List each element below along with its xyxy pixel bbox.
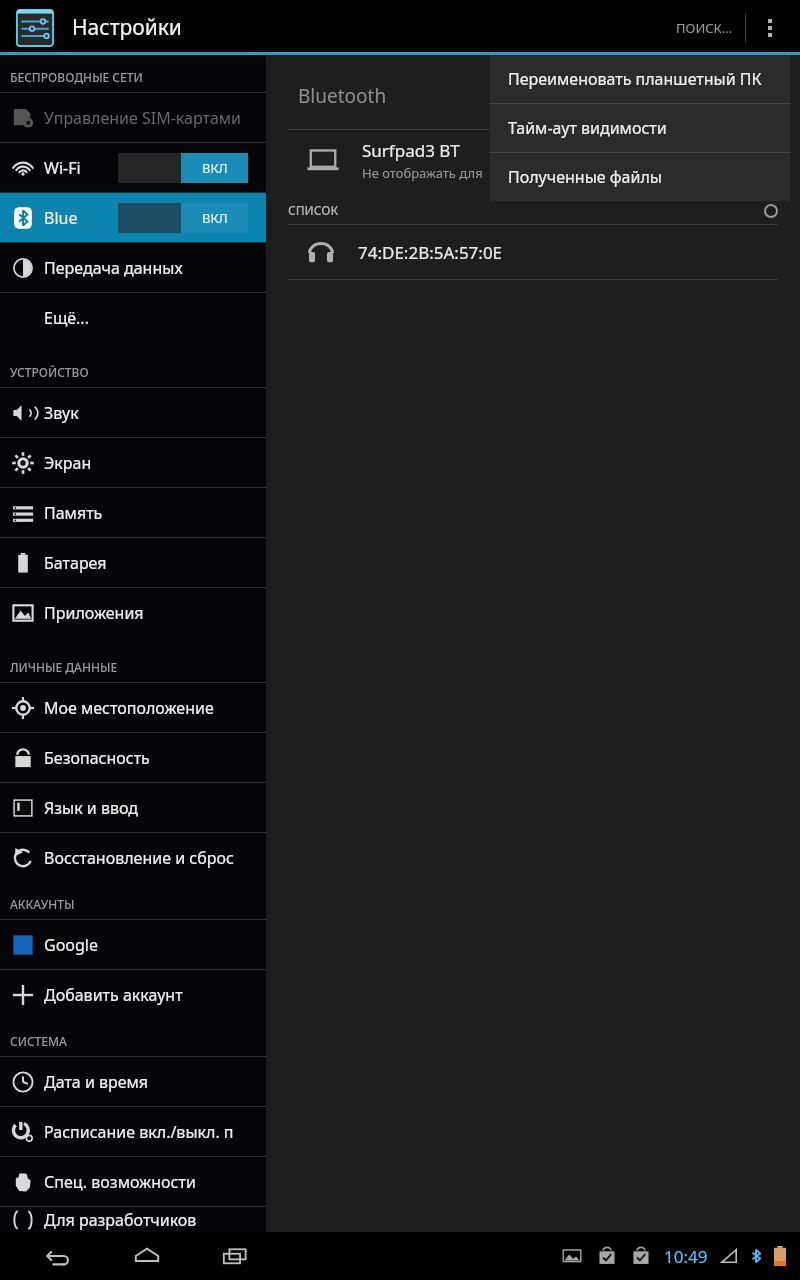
staticText: Батарея: [44, 552, 107, 574]
button[interactable]: Безопасность: [0, 733, 266, 782]
button[interactable]: ВКЛ: [118, 203, 248, 233]
staticText: ПОИСК...: [676, 19, 733, 37]
button[interactable]: Расписание вкл./выкл. п: [0, 1107, 266, 1156]
button[interactable]: Память: [0, 488, 266, 537]
staticText: АККАУНТЫ: [10, 896, 75, 912]
staticText: Bluetooth: [44, 207, 81, 229]
staticText: СПИСОК: [288, 202, 339, 218]
button[interactable]: Surfpad3 BT: [266, 130, 800, 190]
button[interactable]: Полученные файлы: [490, 153, 790, 201]
button[interactable]: Переименовать планшетный ПК: [490, 55, 790, 103]
staticText: Расписание вкл./выкл. п: [44, 1121, 234, 1143]
button[interactable]: Экран: [0, 438, 266, 487]
staticText: ВКЛ: [202, 159, 228, 177]
button[interactable]: Мое местоположение: [0, 683, 266, 732]
staticText: 10:49: [664, 1245, 708, 1268]
button[interactable]: Язык и ввод: [0, 783, 266, 832]
staticText: Добавить аккаунт: [44, 984, 183, 1006]
button[interactable]: Bluetooth: [0, 193, 266, 242]
staticText: Для разработчиков: [44, 1209, 197, 1231]
button[interactable]: Для разработчиков: [0, 1207, 266, 1232]
button[interactable]: Google: [0, 920, 266, 969]
staticText: Тайм-аут видимости: [508, 117, 667, 139]
button[interactable]: Ещё: [746, 0, 794, 55]
staticText: ВКЛ: [202, 209, 228, 227]
staticText: Безопасность: [44, 747, 150, 769]
staticText: Мое местоположение: [44, 697, 214, 719]
staticText: Дата и время: [44, 1071, 149, 1093]
button[interactable]: Передача данных: [0, 243, 266, 292]
staticText: 74:DE:2B:5A:57:0E: [358, 241, 503, 264]
staticText: Экран: [44, 452, 92, 474]
button[interactable]: Управление SIM-картами: [0, 93, 266, 142]
staticText: УСТРОЙСТВО: [10, 364, 89, 380]
button[interactable]: Обзор: [212, 1233, 258, 1279]
button[interactable]: Добавить аккаунт: [0, 970, 266, 1019]
button[interactable]: Назад: [36, 1233, 82, 1279]
button[interactable]: Ещё...: [0, 293, 266, 342]
staticText: ЛИЧНЫЕ ДАННЫЕ: [10, 659, 118, 675]
button[interactable]: Главный экран: [124, 1233, 170, 1279]
staticText: БЕСПРОВОДНЫЕ СЕТИ: [10, 69, 143, 85]
staticText: Полученные файлы: [508, 166, 662, 188]
staticText: Bluetooth: [298, 83, 387, 109]
staticText: Не отображать для: [362, 164, 483, 182]
staticText: Wi-Fi: [44, 157, 81, 179]
staticText: Ещё...: [44, 307, 89, 329]
button[interactable]: 74:DE:2B:5A:57:0E: [266, 225, 800, 279]
staticText: Спец. возможности: [44, 1171, 196, 1193]
button[interactable]: Тайм-аут видимости: [490, 104, 790, 152]
staticText: Переименовать планшетный ПК: [508, 68, 762, 90]
button[interactable]: Приложения: [0, 588, 266, 637]
button[interactable]: Батарея: [0, 538, 266, 587]
staticText: Настройки: [72, 13, 182, 42]
button[interactable]: Звук: [0, 388, 266, 437]
button[interactable]: Спец. возможности: [0, 1157, 266, 1206]
button[interactable]: Wi-Fi: [0, 143, 266, 192]
button[interactable]: ПОИСК...: [676, 0, 733, 55]
staticText: Google: [44, 934, 99, 956]
staticText: Звук: [44, 402, 79, 424]
staticText: СИСТЕМА: [10, 1033, 67, 1049]
staticText: Восстановление и сброс: [44, 847, 234, 869]
button[interactable]: Восстановление и сброс: [0, 833, 266, 882]
button[interactable]: ВКЛ: [118, 153, 248, 183]
staticText: Surfpad3 BT: [362, 139, 460, 162]
staticText: Память: [44, 502, 103, 524]
staticText: Передача данных: [44, 257, 183, 279]
staticText: Управление SIM-картами: [44, 107, 242, 129]
staticText: Язык и ввод: [44, 797, 139, 819]
button[interactable]: Дата и время: [0, 1057, 266, 1106]
staticText: Приложения: [44, 602, 144, 624]
